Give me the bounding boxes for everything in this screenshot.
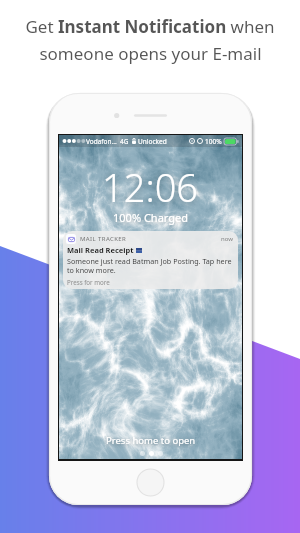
- staticText: 4G: [120, 137, 129, 146]
- staticText: Get Instant Notification when: [25, 15, 275, 38]
- staticText: Press home to open: [106, 434, 196, 447]
- staticText: 100%: [205, 137, 222, 146]
- staticText: Unlocked: [138, 137, 167, 146]
- staticText: 12:06: [102, 161, 199, 213]
- staticText: Someone just read Batman Job Posting. Ta…: [67, 256, 234, 275]
- staticText: someone opens your E-mail: [39, 42, 262, 65]
- button[interactable]: MAIL TRACKER: [63, 231, 238, 289]
- button[interactable]: Home: [137, 469, 164, 496]
- staticText: Vodafon...: [86, 137, 117, 146]
- staticText: Mail Read Receipt: [67, 245, 134, 255]
- staticText: Press for more: [67, 278, 110, 286]
- staticText: now: [221, 235, 233, 243]
- staticText: MAIL TRACKER: [80, 235, 127, 243]
- staticText: 100% Charged: [113, 210, 188, 225]
